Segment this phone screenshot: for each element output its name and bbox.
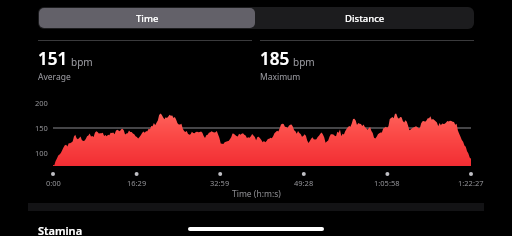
- staticText: 1:22:27: [458, 178, 484, 188]
- other: Home indicator: [188, 227, 324, 231]
- button[interactable]: Distance: [257, 8, 473, 28]
- staticText: 49:28: [294, 178, 314, 188]
- staticText: Time (h:m:s): [232, 188, 281, 200]
- staticText: 151: [38, 47, 68, 70]
- staticText: bpm: [293, 55, 315, 69]
- staticText: 185: [260, 47, 290, 70]
- staticText: 0:00: [46, 178, 61, 188]
- staticText: bpm: [71, 55, 93, 69]
- staticText: 200: [35, 98, 48, 108]
- staticText: Stamina: [38, 223, 83, 236]
- staticText: 1:05:58: [374, 178, 400, 188]
- staticText: Maximum: [260, 71, 301, 83]
- button[interactable]: Stamina: [38, 223, 83, 236]
- button[interactable]: Time: [39, 8, 255, 28]
- staticText: Time: [136, 12, 159, 25]
- staticText: Distance: [345, 12, 385, 25]
- staticText: 150: [35, 123, 48, 133]
- staticText: 100: [35, 148, 48, 158]
- staticText: Average: [38, 71, 71, 83]
- staticText: 32:59: [210, 178, 230, 188]
- staticText: 16:29: [127, 178, 147, 188]
